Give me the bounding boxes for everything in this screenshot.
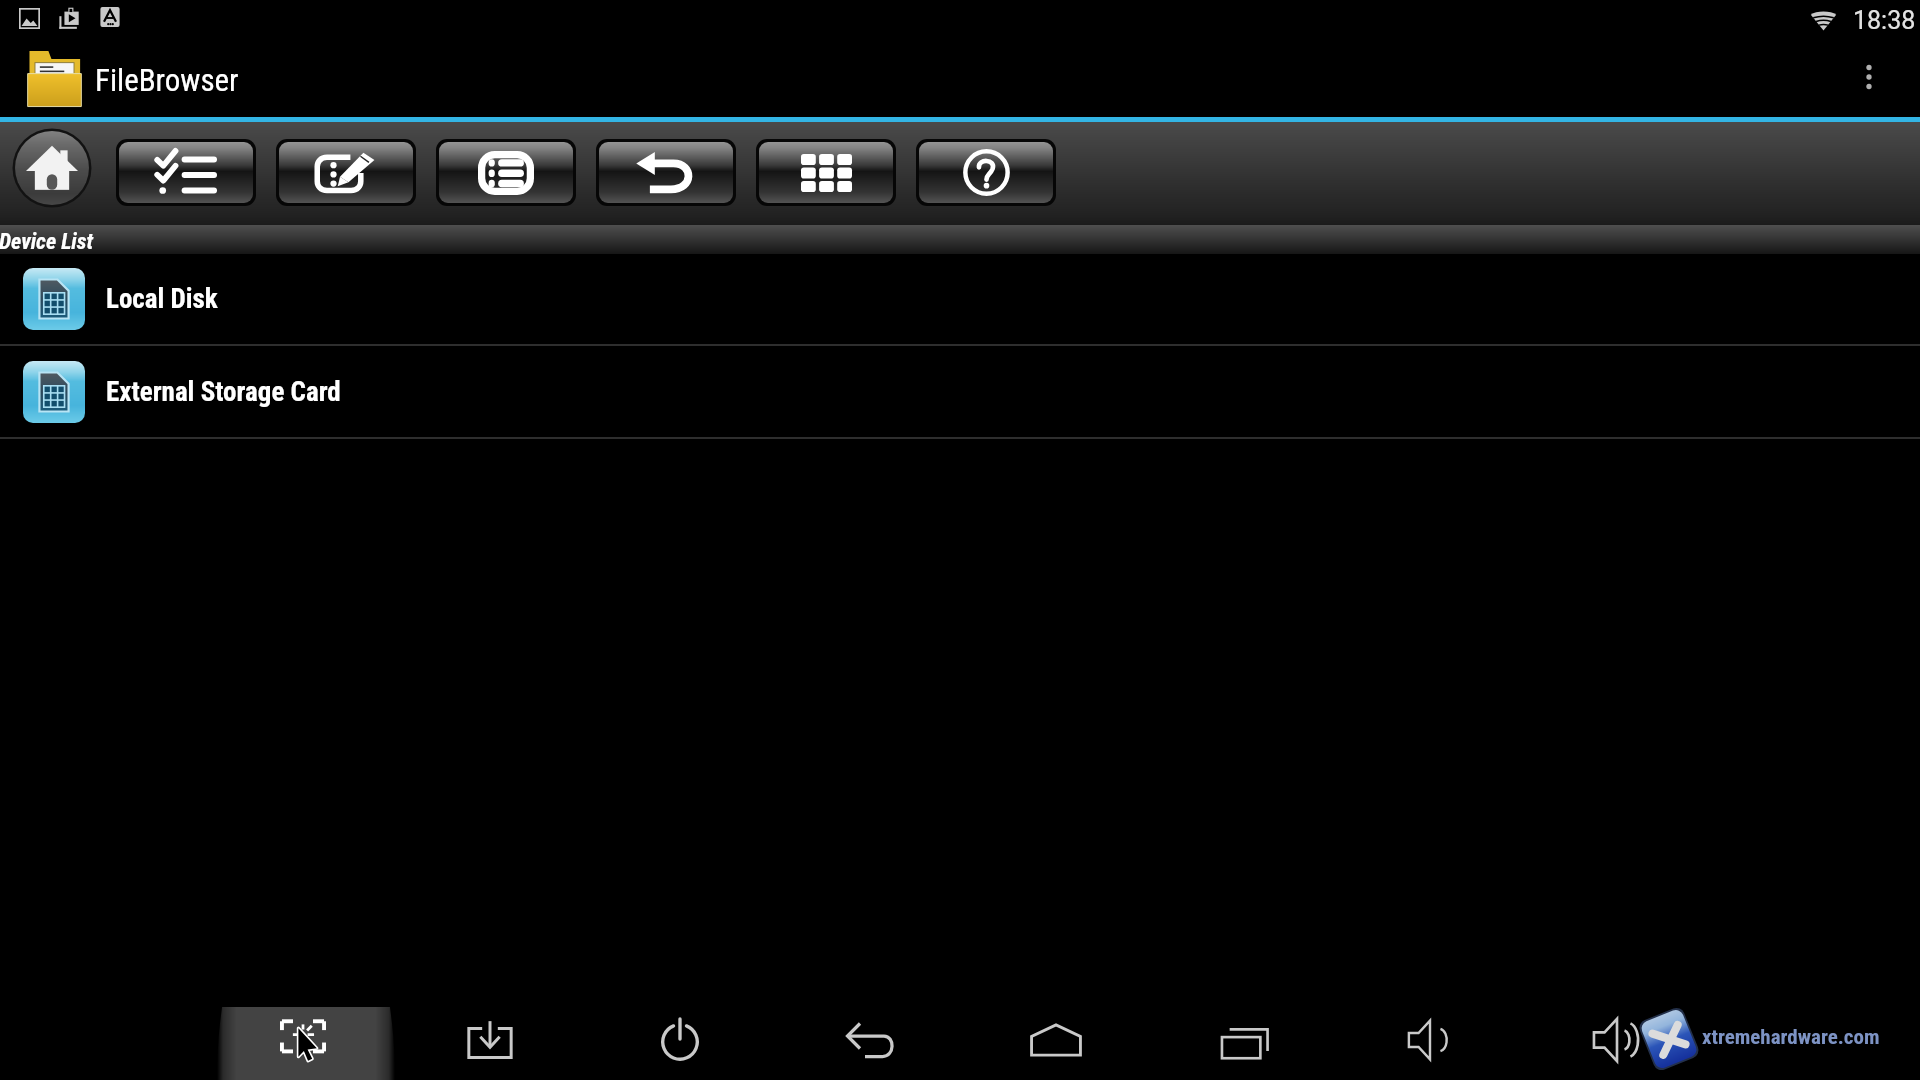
button[interactable]: List <box>439 142 573 203</box>
button[interactable]: Select all <box>119 142 253 203</box>
button[interactable]: Local Disk <box>0 254 1920 344</box>
button[interactable]: Edit <box>279 142 413 203</box>
button[interactable]: Power <box>635 1000 725 1080</box>
staticText: External Storage Card <box>106 376 341 408</box>
button[interactable]: Recents <box>1200 1000 1290 1080</box>
button[interactable]: More options <box>1845 53 1893 101</box>
button[interactable]: Volume up <box>1572 1000 1662 1080</box>
staticText: FileBrowser <box>95 62 239 98</box>
staticText: xtremehardware.com <box>1702 1025 1880 1050</box>
staticText: 18:38 <box>1853 6 1916 35</box>
staticText: Device List <box>0 229 93 255</box>
button[interactable]: Download <box>445 1000 535 1080</box>
staticText: Local Disk <box>106 283 218 315</box>
button[interactable]: Help <box>919 142 1053 203</box>
button[interactable]: Apps <box>759 142 893 203</box>
button[interactable]: Home <box>1011 1000 1101 1080</box>
button[interactable]: Back <box>825 1000 915 1080</box>
button[interactable]: External Storage Card <box>0 346 1920 437</box>
button[interactable]: Undo <box>599 142 733 203</box>
button[interactable]: Home <box>10 126 94 210</box>
button[interactable]: Volume down <box>1385 1000 1475 1080</box>
button[interactable]: Screenshot <box>258 1000 348 1080</box>
